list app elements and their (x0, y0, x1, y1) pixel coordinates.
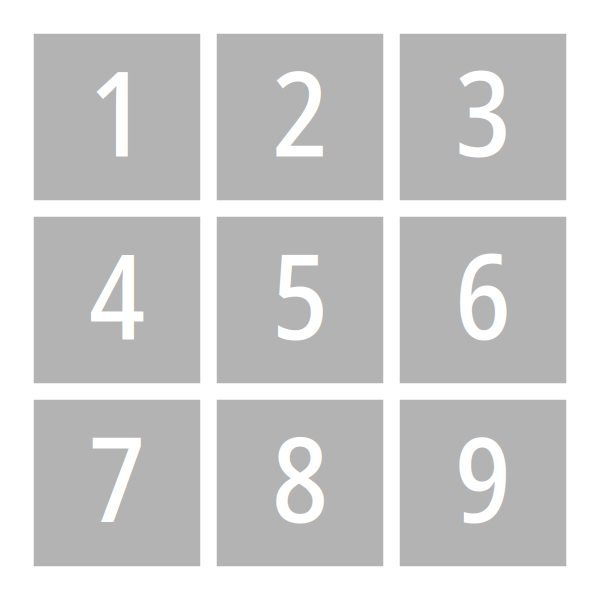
staticText: 6 (455, 214, 511, 374)
button[interactable]: 6 (400, 217, 566, 383)
staticText: 2 (272, 31, 328, 191)
staticText: 5 (272, 214, 328, 374)
button[interactable]: 2 (217, 34, 383, 200)
button[interactable]: 3 (400, 34, 566, 200)
staticText: 9 (455, 397, 511, 557)
staticText: 4 (89, 214, 145, 374)
staticText: 8 (272, 397, 328, 557)
button[interactable]: 7 (34, 400, 200, 566)
button[interactable]: 5 (217, 217, 383, 383)
staticText: 3 (455, 31, 511, 191)
button[interactable]: 8 (217, 400, 383, 566)
staticText: 1 (89, 31, 145, 191)
button[interactable]: 9 (400, 400, 566, 566)
staticText: 7 (89, 397, 145, 557)
button[interactable]: 4 (34, 217, 200, 383)
button[interactable]: 1 (34, 34, 200, 200)
